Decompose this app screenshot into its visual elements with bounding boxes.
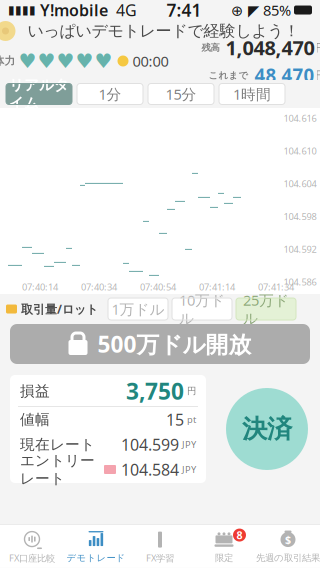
button[interactable]: 500万ドル開放 <box>0 324 320 364</box>
staticText: 104.592 <box>283 243 316 255</box>
button[interactable]: FX学習 <box>128 526 192 566</box>
staticText: Y!mobile <box>36 0 108 21</box>
staticText: 500万ドル開放 <box>97 329 251 359</box>
staticText: pt <box>187 413 196 426</box>
staticText: FX口座比較 <box>9 552 55 564</box>
button[interactable]: 15分 <box>148 83 214 104</box>
button[interactable]: リアルタイム <box>6 83 72 104</box>
staticText: JPY <box>182 463 196 476</box>
staticText: 15分 <box>165 84 196 104</box>
staticText: エントリーレート <box>20 451 95 487</box>
staticText: 104.586 <box>283 276 316 288</box>
staticText: 104.610 <box>283 145 316 157</box>
staticText: 104.598 <box>283 210 316 223</box>
button[interactable]: FX口座比較 <box>0 526 64 566</box>
staticText: 現在レート <box>20 435 95 453</box>
staticText: 損益 <box>20 382 50 400</box>
staticText: 07:41:34 <box>258 281 294 293</box>
button[interactable]: 1分 <box>77 83 143 104</box>
staticText: 4G <box>108 0 137 21</box>
staticText: 3,750 <box>126 376 184 406</box>
staticText: 48,470 <box>254 63 314 88</box>
staticText: ⊕ ◤ 85% <box>231 0 291 20</box>
staticText: デモトレード <box>66 552 125 564</box>
staticText: 1時間 <box>233 84 271 104</box>
staticText: 円 <box>315 41 320 54</box>
staticText: 00:00 <box>132 51 168 71</box>
staticText: 104.599 <box>121 434 179 455</box>
staticText: 104.604 <box>283 177 316 190</box>
button[interactable]: 1時間 <box>219 83 285 104</box>
staticText: 104.584 <box>121 459 179 480</box>
button[interactable]: デモトレード <box>64 526 128 566</box>
staticText: $ <box>285 532 291 547</box>
button[interactable]: $ <box>256 526 320 566</box>
staticText: ♥ <box>75 50 93 72</box>
staticText: 25万ドル <box>243 290 289 328</box>
staticText: 先週の取引結果 <box>256 552 320 564</box>
staticText: ♥ <box>37 50 55 72</box>
staticText: ♥ <box>94 50 112 72</box>
staticText: FX学習 <box>146 552 174 564</box>
staticText: 07:40:14 <box>22 281 58 293</box>
staticText: JPY <box>182 438 196 451</box>
staticText: 決済 <box>242 413 292 444</box>
staticText: 15 <box>166 409 184 430</box>
staticText: 07:40:54 <box>140 281 176 293</box>
staticText: 07:40:34 <box>81 281 117 293</box>
staticText: ♥ <box>18 50 36 72</box>
staticText: 値幅 <box>20 410 50 428</box>
staticText: ♥ <box>56 50 74 72</box>
button[interactable]: 8 <box>192 526 256 566</box>
button[interactable]: 決済 <box>226 388 308 470</box>
staticText: 07:41:14 <box>199 281 235 293</box>
staticText: 取引量/ロット <box>21 301 98 317</box>
staticText: 10万ドル <box>179 290 225 328</box>
staticText: これまで <box>208 69 248 81</box>
staticText: 7:41 <box>166 0 201 21</box>
staticText: 円 <box>187 385 196 397</box>
staticText: 1万ドル <box>111 299 164 319</box>
button[interactable]: 10万ドル <box>172 298 232 320</box>
staticText: 限定 <box>215 552 233 564</box>
staticText: 1分 <box>98 84 121 104</box>
staticText: 円 <box>315 69 320 82</box>
staticText: 残高 <box>201 42 219 53</box>
button[interactable]: 1万ドル <box>108 298 168 320</box>
button[interactable]: 25万ドル <box>236 298 296 320</box>
staticText: ▮▮▮▮ <box>8 3 36 17</box>
staticText: 体力 <box>0 54 15 67</box>
staticText: いっぱいデモトレードで経験しよう！ <box>27 21 299 41</box>
staticText: 1,048,470 <box>225 34 314 61</box>
staticText: 8 <box>236 528 242 542</box>
staticText: リアルタイム <box>9 76 69 112</box>
staticText: 104.616 <box>283 112 316 124</box>
